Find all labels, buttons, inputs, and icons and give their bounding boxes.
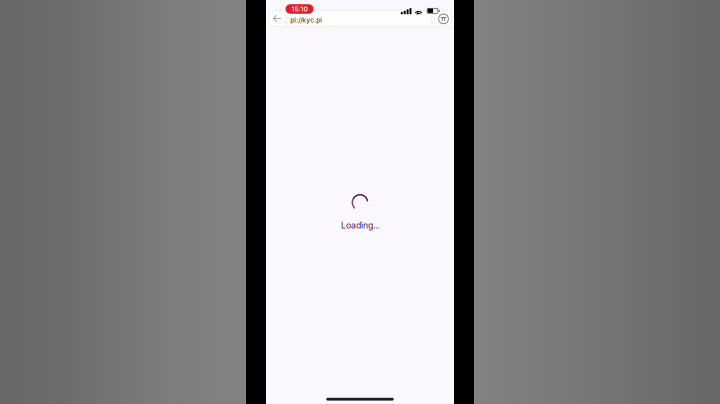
button[interactable]: pi://kyc.pi [287, 10, 432, 27]
staticText: 15:10 [291, 5, 307, 13]
button[interactable]: Pi Browser menu [434, 10, 452, 27]
staticText: pi://kyc.pi [290, 16, 322, 24]
button[interactable]: Back [268, 10, 286, 27]
staticText: Loading... [341, 220, 379, 231]
